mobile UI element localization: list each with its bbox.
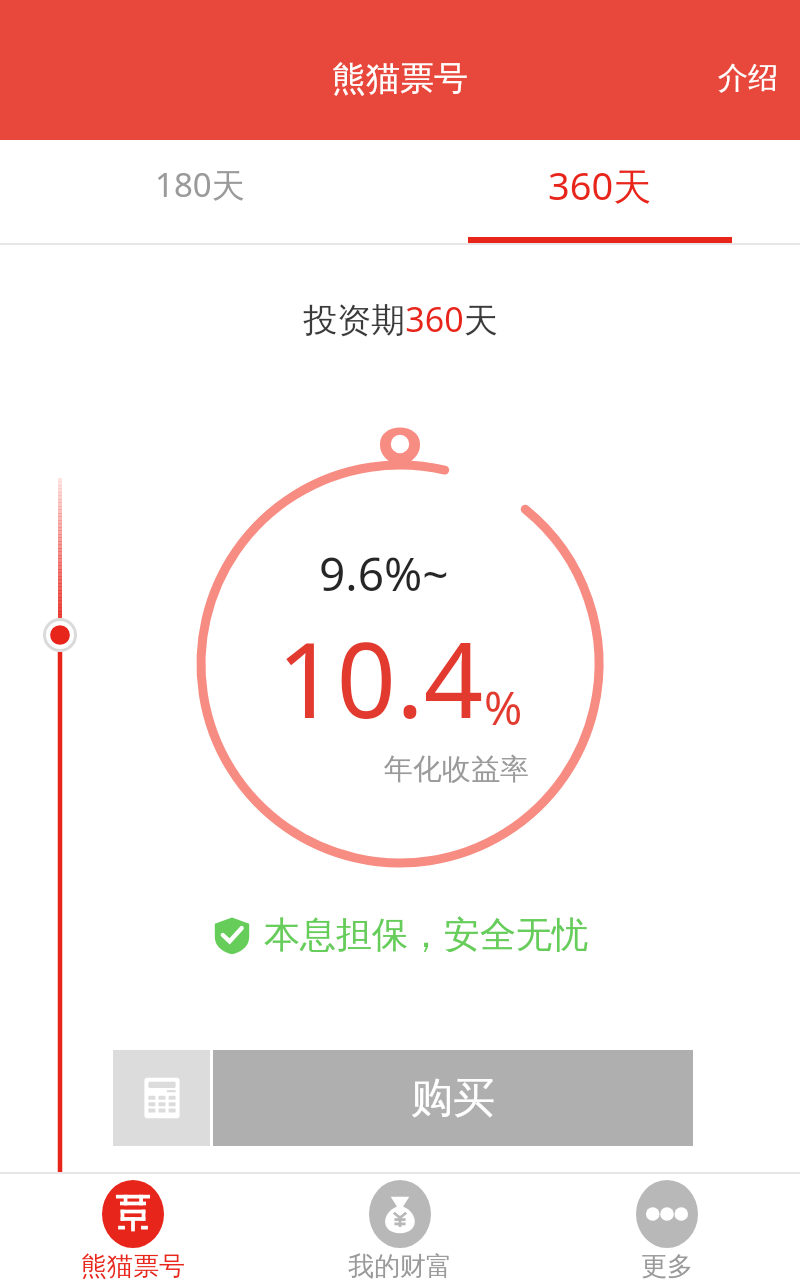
staticText: 介绍 xyxy=(718,59,778,97)
staticText: 更多 xyxy=(641,1250,693,1280)
staticText: 投资期360天 xyxy=(303,296,498,342)
staticText: 年化收益率 xyxy=(384,751,529,788)
staticText: % xyxy=(484,676,523,739)
staticText: 360天 xyxy=(548,159,652,211)
staticText: 熊猫票号 xyxy=(332,57,468,100)
button[interactable]: 更多 xyxy=(533,1172,800,1280)
staticText: 180天 xyxy=(155,162,245,207)
button[interactable]: 购买 xyxy=(213,1050,693,1146)
staticText: 我的财富 xyxy=(348,1250,452,1280)
button[interactable]: 计算器 xyxy=(113,1050,210,1146)
button[interactable]: 投资金额滑块 xyxy=(43,618,77,652)
button[interactable]: 180天 xyxy=(0,140,400,245)
staticText: 熊猫票号 xyxy=(81,1250,185,1280)
button[interactable]: 360天 xyxy=(400,140,800,245)
staticText: 9.6%~ xyxy=(319,542,449,605)
staticText: 购买 xyxy=(411,1072,495,1125)
staticText: 10.4 xyxy=(277,607,484,749)
button[interactable]: 我的财富 xyxy=(266,1172,533,1280)
staticText: 本息担保，安全无忧 xyxy=(264,912,588,957)
button[interactable]: 熊猫票号 xyxy=(0,1172,266,1280)
button[interactable]: 介绍 xyxy=(696,49,800,107)
button[interactable]: 本息担保，安全无忧 xyxy=(0,912,800,957)
